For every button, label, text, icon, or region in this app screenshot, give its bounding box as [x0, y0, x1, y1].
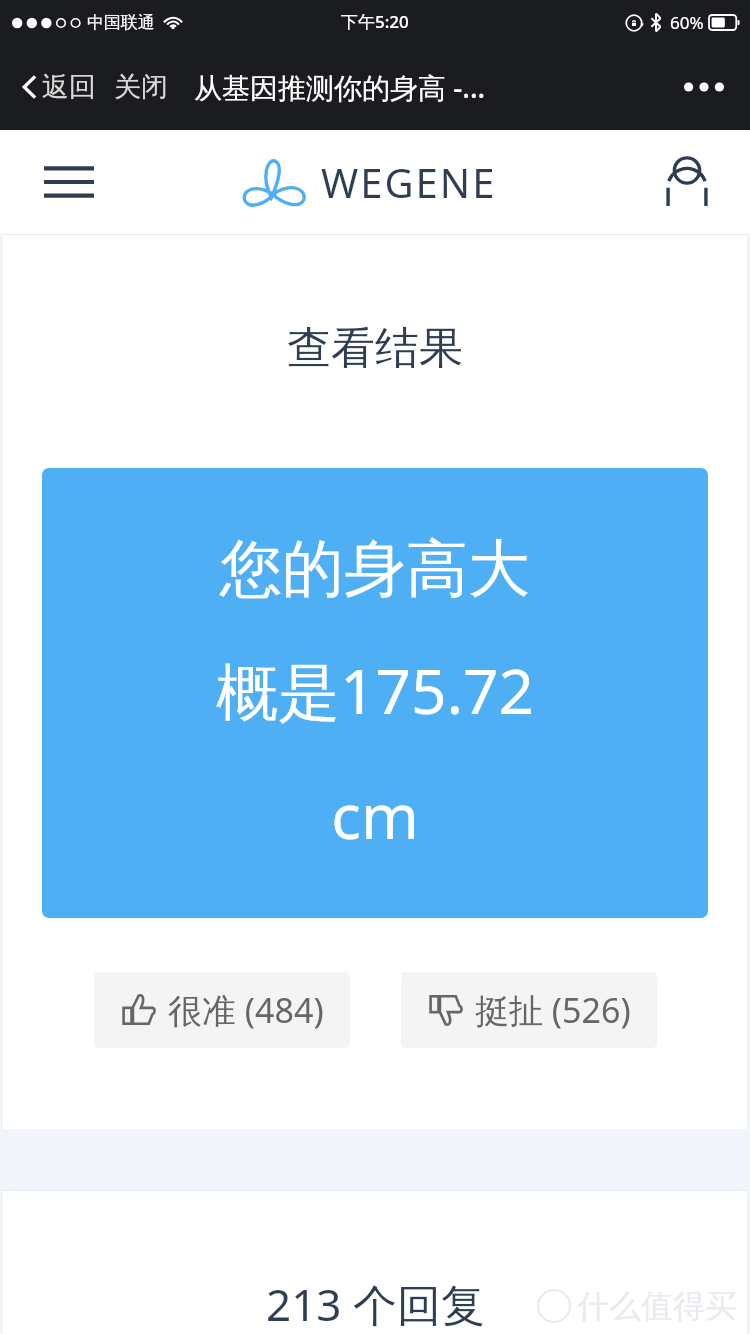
staticText: cm [331, 773, 419, 857]
staticText: 60% [670, 11, 704, 34]
staticText: 下午5:20 [341, 10, 409, 33]
button[interactable]: 您的身高大 [42, 468, 708, 918]
button[interactable]: 返回 [18, 62, 100, 112]
staticText: 什么值得买 [577, 1286, 737, 1326]
button[interactable]: 很准 (484) [94, 972, 350, 1048]
button[interactable]: Menu [36, 156, 102, 208]
button[interactable]: 关闭 [110, 62, 172, 112]
staticText: 213 个回复 [266, 1274, 485, 1334]
staticText: WEGENE [321, 155, 497, 209]
button[interactable]: More options [672, 72, 736, 102]
staticText: 您的身高大 [220, 530, 530, 608]
staticText: 概是175.72 [216, 648, 534, 733]
button[interactable]: 挺扯 (526) [401, 972, 657, 1048]
staticText: 关闭 [114, 70, 168, 104]
staticText: 查看结果 [287, 321, 463, 376]
button[interactable]: Account [660, 152, 714, 212]
staticText: 很准 (484) [168, 987, 324, 1033]
staticText: 中国联通 [87, 12, 155, 33]
staticText: 挺扯 (526) [475, 987, 631, 1033]
staticText: 返回 [42, 70, 96, 104]
staticText: 从基因推测你的身高 -... [194, 68, 486, 106]
